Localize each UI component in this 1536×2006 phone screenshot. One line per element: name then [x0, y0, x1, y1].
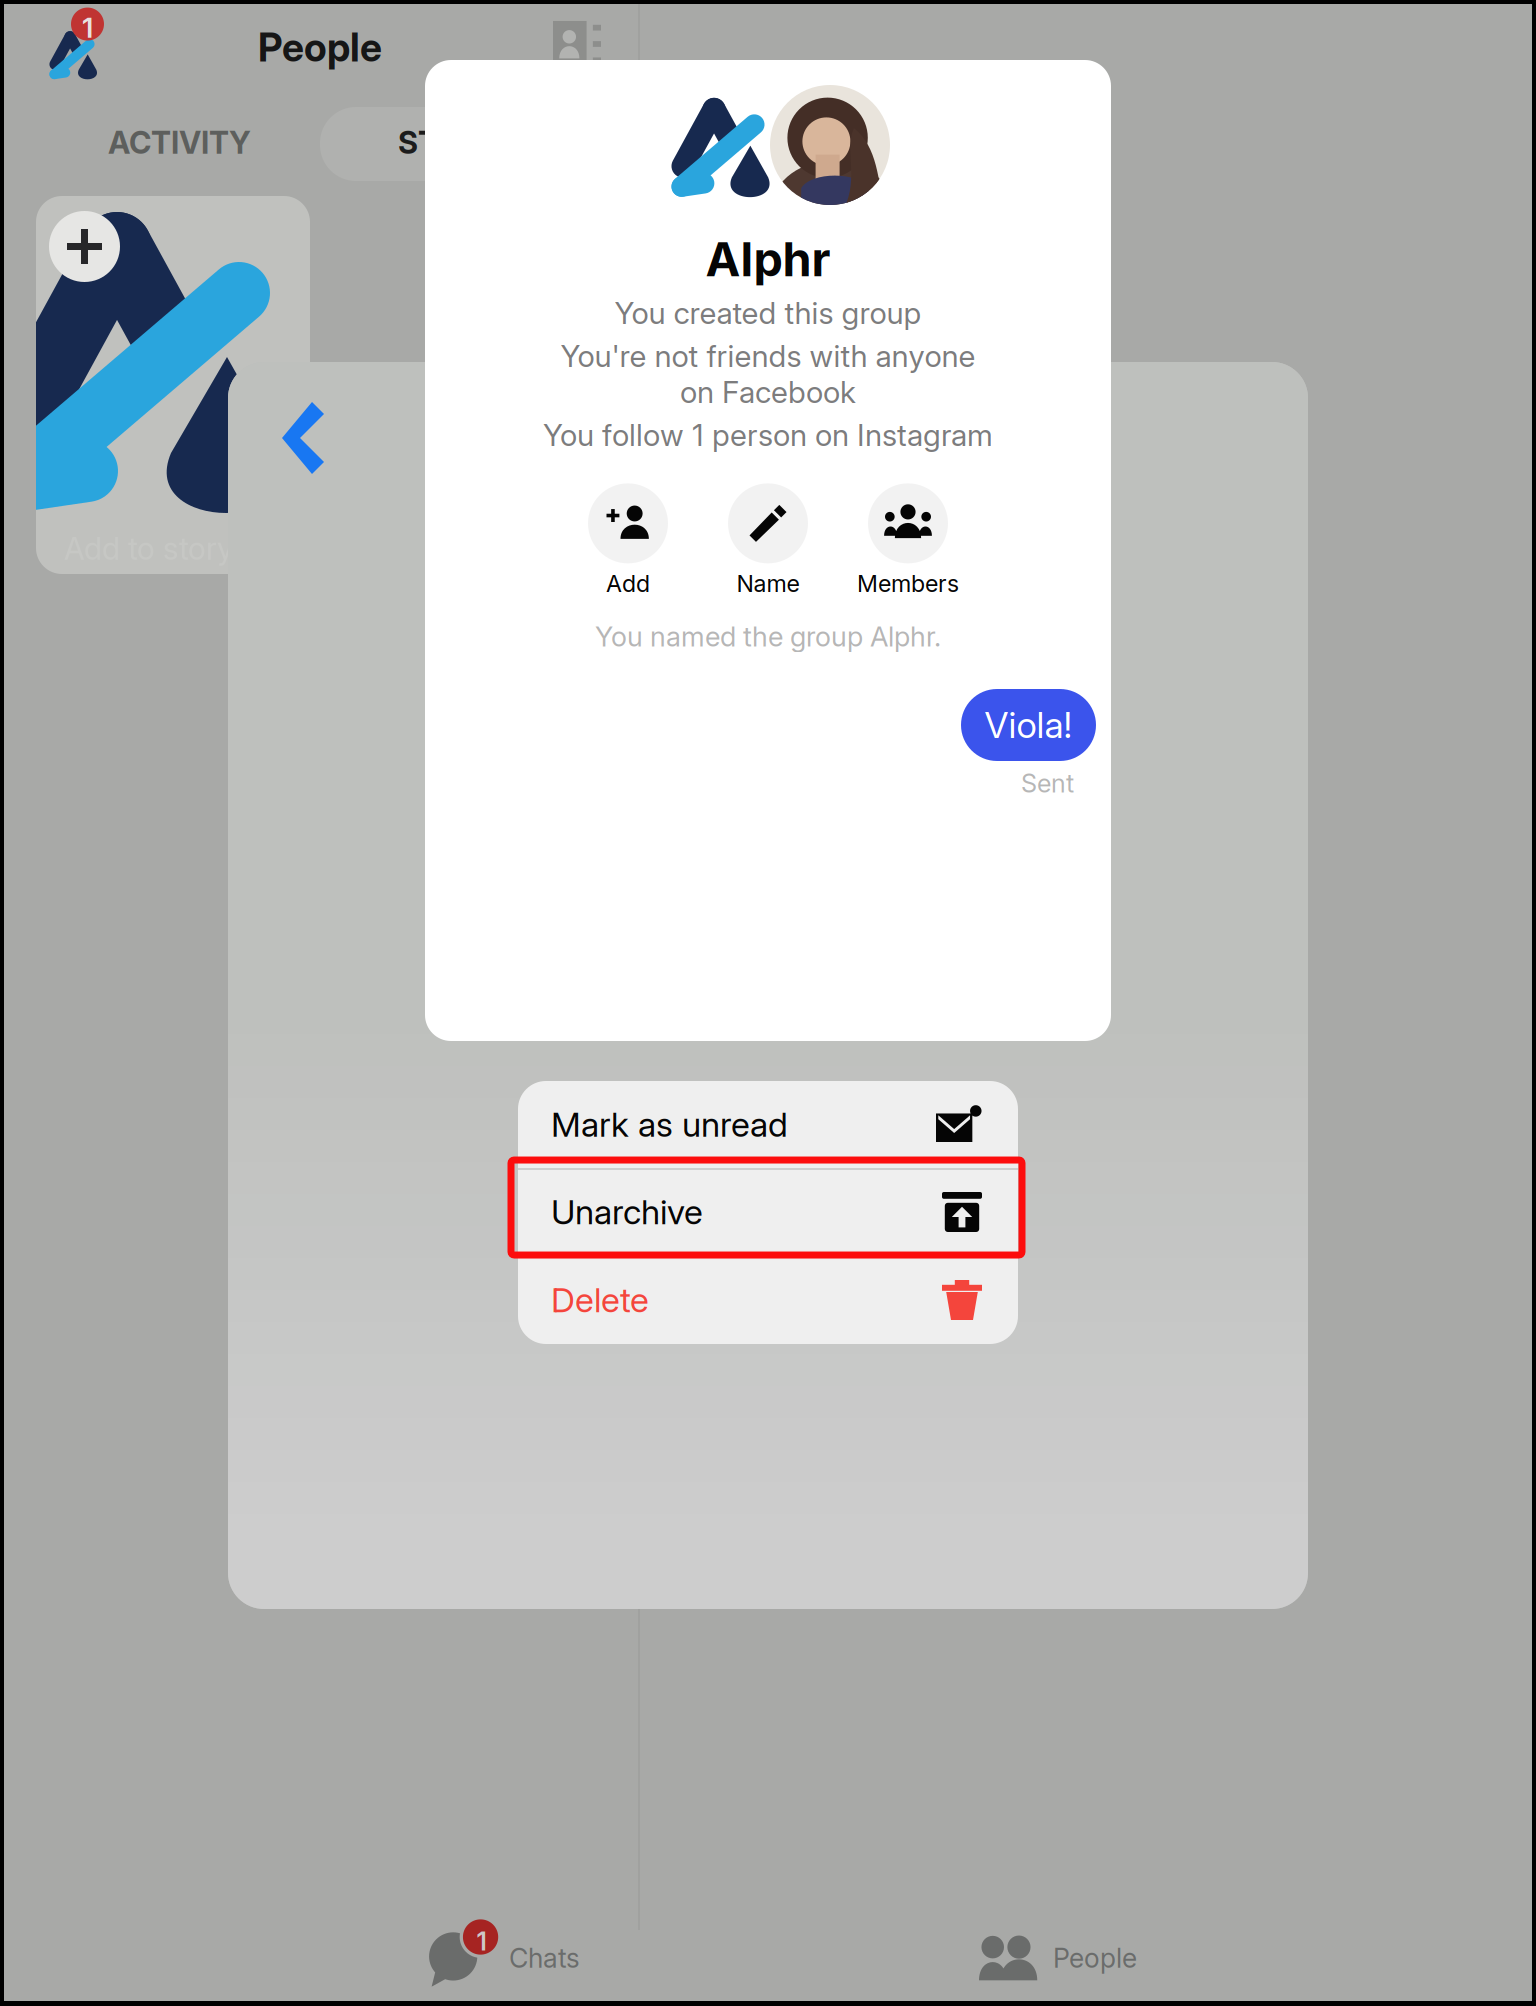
- staticText: You follow 1 person on Instagram: [543, 417, 993, 453]
- button[interactable]: Members: [838, 478, 978, 603]
- button[interactable]: Contacts: [537, 4, 617, 84]
- button[interactable]: Back: [264, 384, 348, 494]
- staticText: 1: [82, 11, 93, 44]
- staticText: ACTIVITY: [108, 124, 251, 161]
- button[interactable]: Delete: [518, 1256, 1018, 1344]
- button[interactable]: People: [640, 1888, 1536, 2006]
- button[interactable]: ACTIVITY: [82, 110, 277, 175]
- staticText: Name: [736, 569, 799, 598]
- staticText: Chats: [509, 1942, 580, 1974]
- staticText: Alphr: [705, 231, 830, 287]
- button[interactable]: Name: [698, 478, 838, 603]
- button[interactable]: Unarchive: [518, 1170, 1018, 1254]
- staticText: Viola!: [984, 703, 1072, 747]
- staticText: You named the group Alphr.: [595, 620, 941, 653]
- staticText: Sent: [1021, 768, 1074, 799]
- button[interactable]: Add: [558, 478, 698, 603]
- button[interactable]: Messenger: [26, 9, 118, 101]
- staticText: People: [1053, 1942, 1137, 1974]
- button[interactable]: Mark as unread: [518, 1081, 1018, 1168]
- staticText: Unarchive: [551, 1191, 703, 1232]
- staticText: on Facebook: [680, 374, 856, 410]
- staticText: 1: [477, 1926, 487, 1956]
- staticText: People: [258, 24, 382, 71]
- staticText: You created this group: [614, 295, 921, 331]
- button[interactable]: Add to story: [36, 196, 310, 574]
- staticText: Mark as unread: [551, 1104, 788, 1145]
- staticText: Members: [857, 569, 959, 598]
- staticText: ST: [398, 124, 438, 161]
- staticText: Delete: [551, 1279, 649, 1320]
- staticText: You're not friends with anyone: [560, 338, 975, 374]
- staticText: Add: [606, 569, 650, 598]
- button[interactable]: 1: [0, 1888, 638, 2006]
- button[interactable]: ST: [372, 110, 464, 175]
